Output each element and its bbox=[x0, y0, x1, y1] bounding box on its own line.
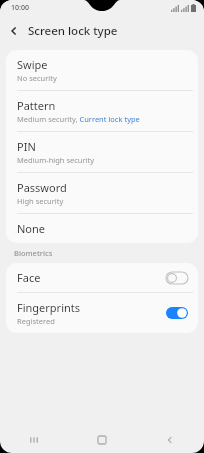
staticText: Password bbox=[17, 180, 67, 195]
button[interactable]: Back bbox=[136, 427, 204, 453]
button[interactable]: Face bbox=[6, 263, 198, 292]
staticText: Biometrics bbox=[14, 248, 53, 258]
staticText: High security bbox=[17, 196, 64, 206]
staticText: PIN bbox=[17, 139, 36, 154]
staticText: Swipe bbox=[17, 57, 48, 72]
staticText: Face bbox=[17, 270, 41, 285]
staticText: Registered bbox=[17, 316, 55, 326]
button[interactable]: Password bbox=[6, 173, 198, 213]
button[interactable]: Fingerprints bbox=[6, 293, 198, 333]
button[interactable]: Swipe bbox=[6, 50, 198, 90]
button[interactable]: Pattern bbox=[6, 91, 198, 131]
button[interactable]: Recents bbox=[0, 427, 68, 453]
button[interactable]: Home bbox=[68, 427, 136, 453]
staticText: 10:00 bbox=[11, 3, 29, 13]
staticText: Screen lock type bbox=[28, 23, 118, 39]
staticText: None bbox=[17, 221, 46, 236]
staticText: Fingerprints bbox=[17, 300, 81, 315]
staticText: No security bbox=[17, 73, 57, 83]
button[interactable]: On bbox=[166, 307, 188, 319]
button[interactable]: None bbox=[6, 214, 198, 243]
staticText: Medium security, Current lock type bbox=[17, 114, 140, 124]
staticText: Medium-high security bbox=[17, 155, 95, 165]
staticText: Pattern bbox=[17, 98, 56, 113]
button[interactable]: PIN bbox=[6, 132, 198, 172]
button[interactable]: Back bbox=[0, 17, 28, 45]
button[interactable]: Off bbox=[166, 272, 188, 284]
